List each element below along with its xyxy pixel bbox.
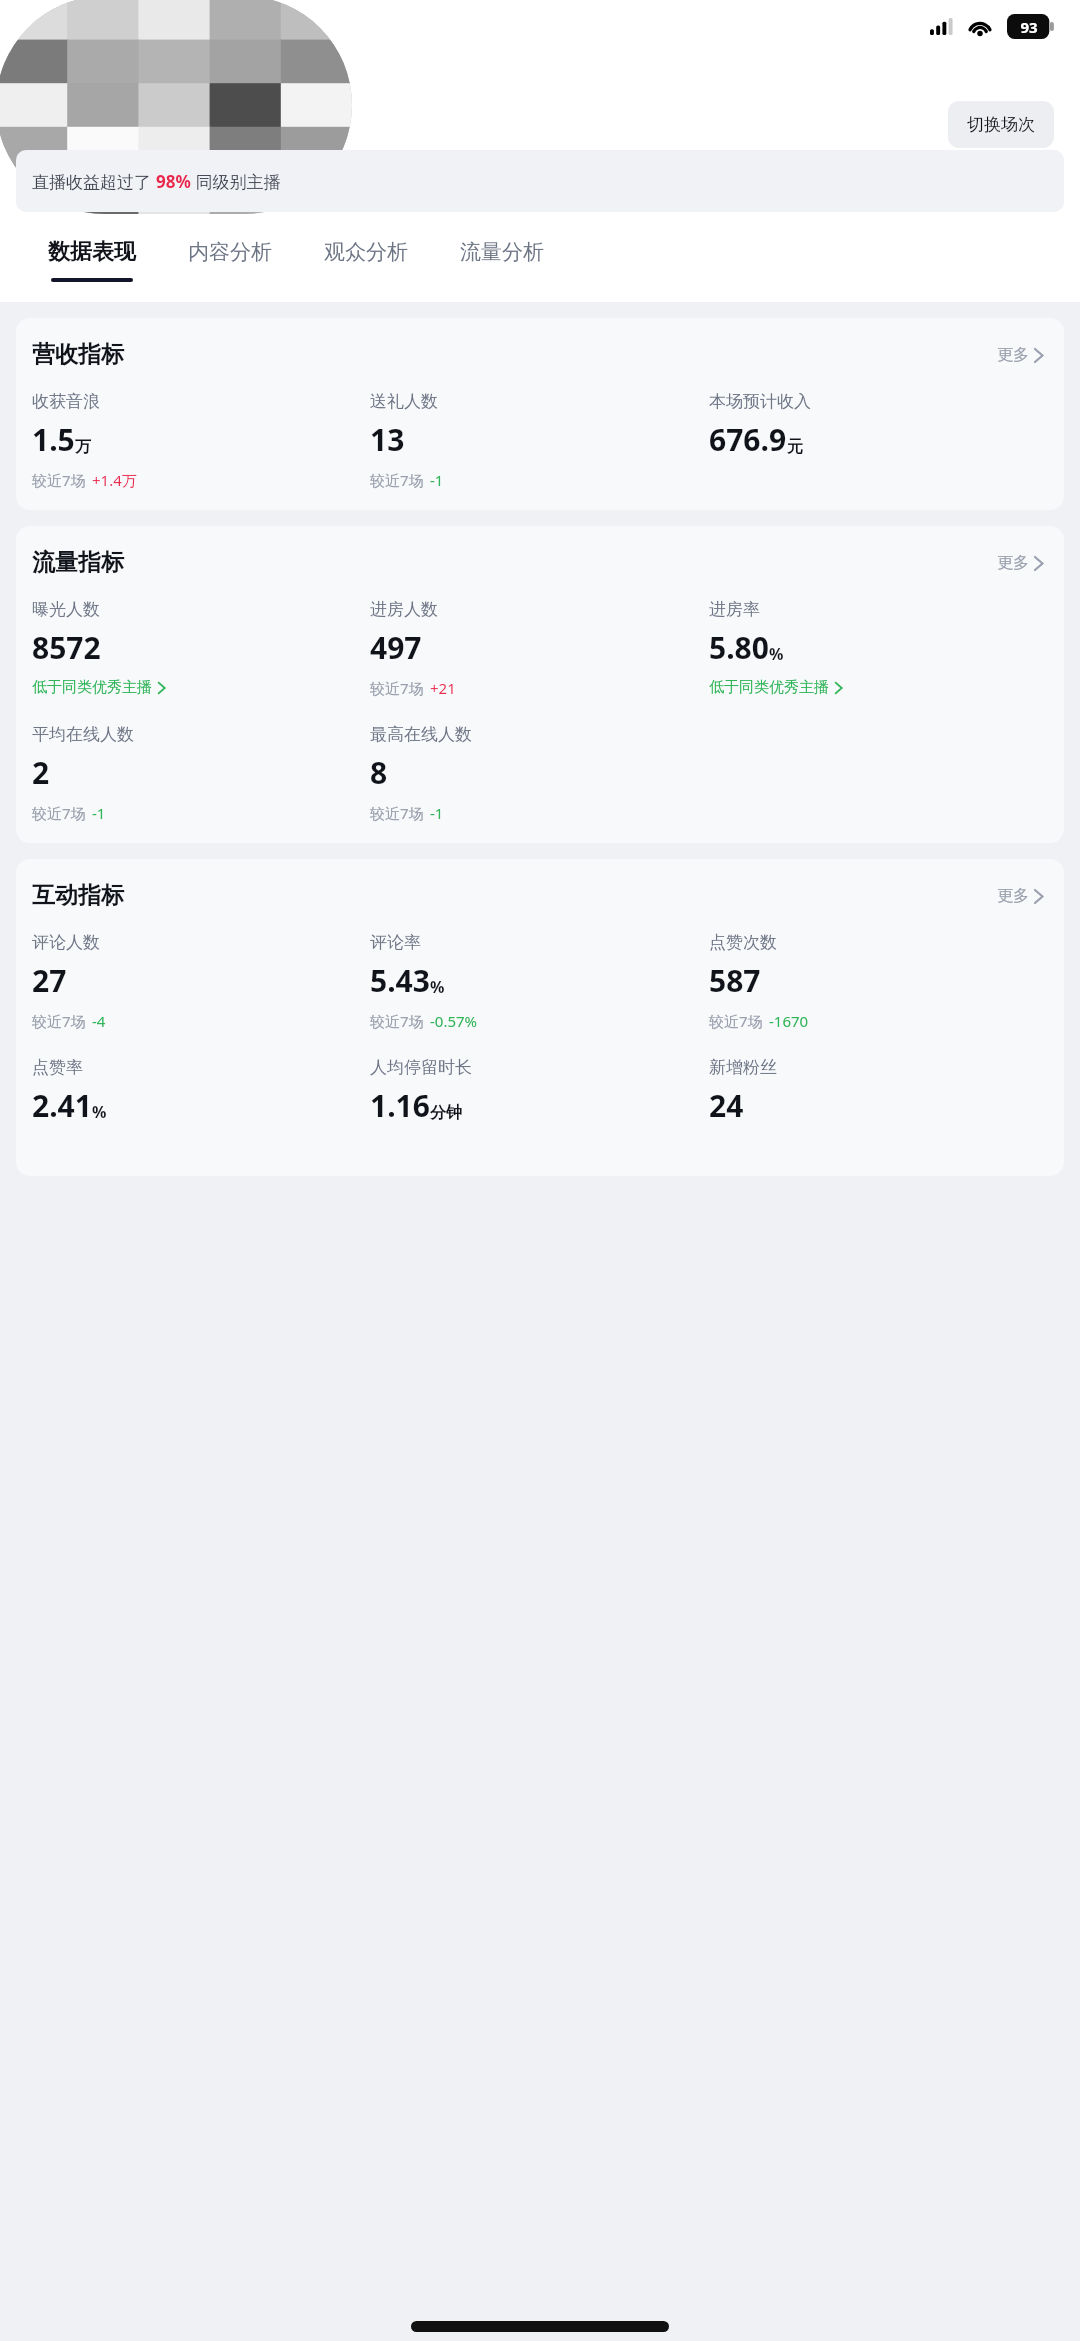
staticText: 5.43	[370, 960, 430, 1001]
staticText: 流量指标	[32, 548, 124, 577]
staticText: 送礼人数	[370, 391, 438, 412]
button[interactable]: 切换场次	[948, 101, 1054, 148]
staticText: 最高在线人数	[370, 724, 472, 745]
staticText: 较近7场	[32, 803, 86, 823]
staticText: 营收指标	[32, 340, 124, 369]
staticText: 27	[32, 960, 67, 1001]
button[interactable]: 数据表现	[48, 232, 136, 288]
staticText: 24	[709, 1085, 744, 1126]
button[interactable]: 更多	[993, 882, 1048, 910]
staticText: 低于同类优秀主播	[32, 678, 152, 697]
staticText: 评论人数	[32, 932, 100, 953]
staticText: 进房人数	[370, 599, 438, 620]
staticText: 万	[75, 437, 91, 457]
staticText: 流量分析	[460, 239, 544, 265]
staticText: 进房率	[709, 599, 760, 620]
staticText: 2.41	[32, 1085, 92, 1126]
staticText: 4小时57分钟56秒	[155, 138, 281, 160]
staticText: %	[769, 643, 784, 665]
staticText: 切换场次	[967, 114, 1035, 135]
staticText: 收获音浪	[32, 391, 100, 412]
staticText: 新增粉丝	[709, 1057, 777, 1078]
staticText: %	[430, 976, 445, 998]
staticText: +1.4万	[92, 470, 137, 490]
staticText: 互动指标	[32, 881, 124, 910]
staticText: -0.57%	[430, 1011, 478, 1031]
staticText: 同级别主播	[191, 170, 281, 193]
staticText: 元	[787, 437, 803, 457]
staticText: +21	[430, 678, 456, 698]
staticText: 评论率	[370, 932, 421, 953]
staticText: 676.9	[709, 419, 787, 460]
staticText: 内容分析	[188, 239, 272, 265]
other: Battery 93 percent	[1007, 14, 1054, 39]
staticText: 1.5	[32, 419, 75, 460]
staticText: 点赞率	[32, 1057, 83, 1078]
staticText: 更多	[997, 886, 1029, 906]
staticText: 1.16	[370, 1085, 430, 1126]
staticText: 较近7场	[709, 1011, 763, 1031]
staticText: -1670	[769, 1011, 809, 1031]
button[interactable]: 直播收益超过了	[16, 150, 1064, 212]
staticText: 数据表现	[48, 238, 136, 266]
staticText: 人均停留时长	[370, 1057, 472, 1078]
staticText: 98%	[156, 170, 191, 193]
staticText: 2025-11-22 13:12:05	[155, 111, 307, 133]
staticText: 平均在线人数	[32, 724, 134, 745]
staticText: -1	[92, 803, 106, 823]
staticText: 场数据	[155, 46, 230, 77]
staticText: 本场预计收入	[709, 391, 811, 412]
staticText: 93	[1020, 17, 1038, 37]
staticText: 较近7场	[370, 803, 424, 823]
staticText: 直播收益超过了	[32, 170, 156, 193]
staticText: -1	[430, 470, 444, 490]
staticText: 更多	[997, 553, 1029, 573]
staticText: -1	[430, 803, 444, 823]
button[interactable]: 低于同类优秀主播	[709, 678, 843, 697]
staticText: 497	[370, 627, 422, 668]
button[interactable]: 更多	[993, 549, 1048, 577]
staticText: 观众分析	[324, 239, 408, 265]
staticText: %	[92, 1101, 107, 1123]
staticText: 较近7场	[370, 678, 424, 698]
staticText: 13	[370, 419, 405, 460]
staticText: 较近7场	[370, 1011, 424, 1031]
button[interactable]: 更多	[993, 341, 1048, 369]
staticText: 较近7场	[32, 470, 86, 490]
button[interactable]: 观众分析	[324, 233, 408, 287]
staticText: 587	[709, 960, 761, 1001]
staticText: 较近7场	[32, 1011, 86, 1031]
staticText: 点赞次数	[709, 932, 777, 953]
staticText: 8	[370, 752, 388, 793]
staticText: 分钟	[430, 1103, 462, 1123]
staticText: 曝光人数	[32, 599, 100, 620]
button[interactable]: 内容分析	[188, 233, 272, 287]
button[interactable]: 低于同类优秀主播	[32, 678, 166, 697]
staticText: 更多	[997, 345, 1029, 365]
staticText: 低于同类优秀主播	[709, 678, 829, 697]
staticText: 8572	[32, 627, 101, 668]
staticText: -4	[92, 1011, 106, 1031]
staticText: 5.80	[709, 627, 769, 668]
staticText: 较近7场	[370, 470, 424, 490]
staticText: 2	[32, 752, 50, 793]
button[interactable]: 流量分析	[460, 233, 544, 287]
